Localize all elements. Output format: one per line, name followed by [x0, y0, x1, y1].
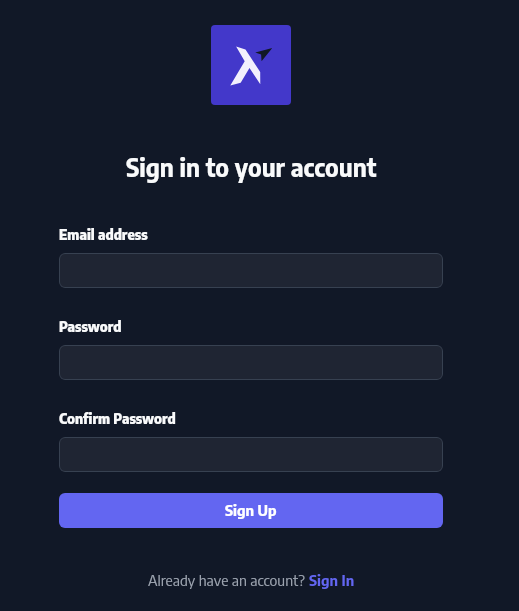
button[interactable]: [59, 253, 443, 288]
button[interactable]: [59, 345, 443, 380]
other: App logo: [211, 25, 291, 105]
button[interactable]: Sign In: [309, 571, 355, 590]
staticText: Email address: [59, 226, 148, 244]
staticText: Sign in to your account: [126, 152, 377, 183]
staticText: Already have an account?: [148, 571, 309, 590]
staticText: Password: [59, 318, 122, 336]
button[interactable]: [59, 437, 443, 472]
button[interactable]: Sign Up: [59, 493, 443, 528]
staticText: Confirm Password: [59, 410, 176, 428]
staticText: Sign Up: [225, 501, 277, 520]
